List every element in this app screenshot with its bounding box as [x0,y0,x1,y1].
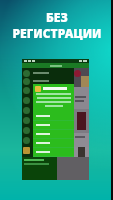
staticText: БЕЗ [46,9,68,25]
staticText: РЕГИСТРАЦИИ [12,25,102,41]
